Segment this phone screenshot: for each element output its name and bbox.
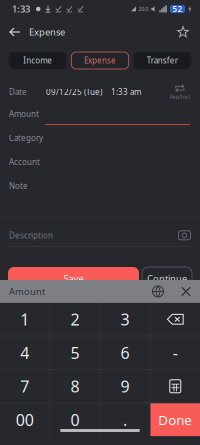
staticText: Save bbox=[63, 272, 83, 285]
button[interactable]: Income bbox=[9, 52, 66, 69]
button[interactable]: 5 bbox=[50, 336, 100, 369]
button[interactable]: Switch keyboard bbox=[147, 280, 169, 303]
staticText: 9 bbox=[121, 376, 130, 397]
button[interactable]: Category bbox=[0, 128, 200, 152]
button[interactable]: 8 bbox=[50, 370, 100, 403]
button[interactable]: Continue bbox=[142, 267, 192, 290]
staticText: 7 bbox=[20, 376, 29, 397]
button[interactable]: Back bbox=[4, 18, 26, 46]
staticText: 5 bbox=[70, 342, 79, 363]
button[interactable]: Done bbox=[150, 403, 200, 436]
button[interactable]: Note bbox=[0, 176, 200, 200]
staticText: - bbox=[173, 342, 178, 363]
button[interactable]: 7 bbox=[0, 370, 49, 403]
button[interactable]: Save bbox=[8, 267, 139, 290]
staticText: Category bbox=[9, 133, 43, 143]
button[interactable]: Hide keyboard bbox=[175, 280, 197, 303]
staticText: Description bbox=[9, 230, 53, 241]
staticText: 20.0 bbox=[138, 5, 148, 13]
button[interactable]: Amount bbox=[0, 104, 200, 128]
button[interactable]: Favourite bbox=[171, 19, 195, 45]
staticText: 09/12/25 (Tue) bbox=[46, 87, 102, 97]
staticText: Expense bbox=[29, 26, 65, 38]
staticText: 8 bbox=[70, 376, 79, 397]
staticText: 2 bbox=[70, 309, 79, 330]
staticText: 1 bbox=[20, 309, 29, 330]
button[interactable]: 0 bbox=[50, 403, 100, 436]
staticText: Income bbox=[23, 55, 52, 66]
button[interactable]: 1 bbox=[0, 303, 49, 336]
button[interactable]: Expense bbox=[71, 52, 129, 69]
button[interactable]: Calculator bbox=[150, 370, 200, 403]
button[interactable]: Transfer bbox=[134, 52, 191, 69]
staticText: Account bbox=[9, 157, 40, 167]
staticText: 4 bbox=[20, 342, 29, 363]
staticText: Date bbox=[9, 87, 27, 97]
button[interactable]: Date bbox=[0, 80, 200, 104]
staticText: Done bbox=[158, 411, 192, 429]
button[interactable]: Description bbox=[0, 227, 200, 244]
staticText: Transfer bbox=[147, 55, 178, 66]
staticText: 1:33 bbox=[12, 3, 30, 15]
button[interactable]: 6 bbox=[100, 336, 150, 369]
staticText: Continue bbox=[147, 272, 187, 285]
staticText: 00 bbox=[16, 409, 34, 430]
staticText: 1:33 am bbox=[111, 87, 141, 97]
staticText: 3 bbox=[121, 309, 130, 330]
button[interactable]: Account bbox=[0, 152, 200, 176]
staticText: Expense bbox=[84, 55, 116, 66]
staticText: 0 bbox=[70, 409, 79, 430]
button[interactable]: Delete bbox=[150, 303, 200, 336]
button[interactable]: 4 bbox=[0, 336, 49, 369]
staticText: Note bbox=[9, 181, 28, 191]
button[interactable]: Minus bbox=[150, 336, 200, 369]
button[interactable]: 00 bbox=[0, 403, 49, 436]
staticText: 6 bbox=[121, 342, 130, 363]
button[interactable]: 3 bbox=[100, 303, 150, 336]
staticText: . bbox=[123, 409, 127, 430]
staticText: Rep/Inst bbox=[169, 93, 190, 100]
button[interactable]: . bbox=[100, 403, 150, 436]
button[interactable]: 9 bbox=[100, 370, 150, 403]
staticText: 52 bbox=[172, 4, 182, 14]
staticText: Amount bbox=[9, 109, 39, 119]
button[interactable]: 2 bbox=[50, 303, 100, 336]
staticText: Amount bbox=[9, 285, 45, 298]
